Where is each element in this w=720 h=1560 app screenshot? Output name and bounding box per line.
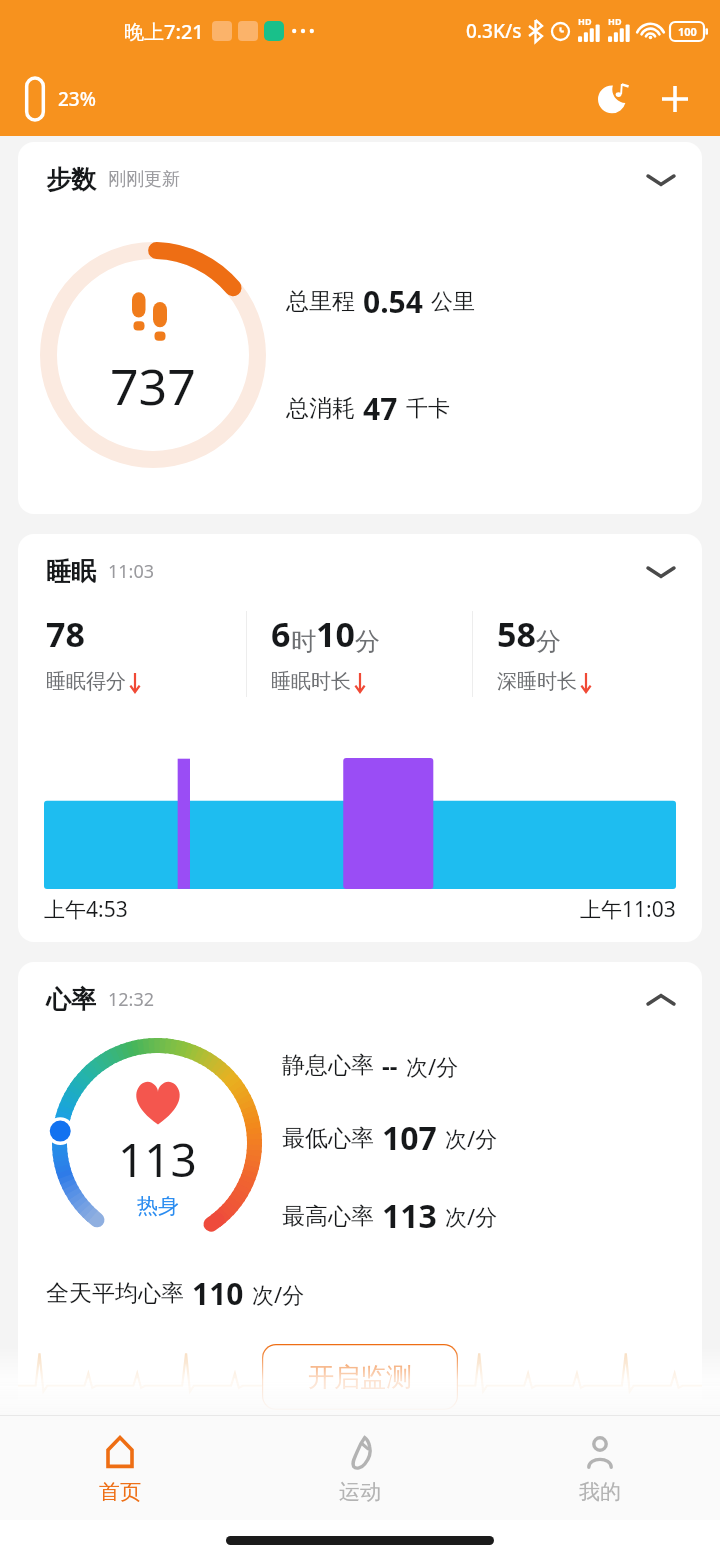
staticText: 上午4:53 bbox=[44, 895, 128, 924]
staticText: 113 bbox=[382, 1194, 437, 1238]
staticText: 我的 bbox=[579, 1479, 621, 1505]
staticText: 公里 bbox=[431, 288, 475, 316]
staticText: 总里程 bbox=[286, 287, 355, 316]
staticText: 深睡时长 bbox=[497, 669, 577, 694]
button[interactable]: Add bbox=[652, 76, 698, 122]
staticText: 6 bbox=[271, 611, 291, 657]
staticText: 12:32 bbox=[108, 987, 155, 1012]
staticText: 热身 bbox=[137, 1193, 179, 1219]
staticText: -- bbox=[382, 1049, 398, 1082]
button[interactable]: 开启监测 bbox=[262, 1344, 458, 1410]
button[interactable]: 步数 bbox=[18, 142, 702, 514]
staticText: 113 bbox=[118, 1128, 197, 1191]
staticText: 最高心率 bbox=[282, 1202, 374, 1231]
staticText: 运动 bbox=[339, 1479, 381, 1505]
staticText: 10 bbox=[316, 611, 355, 657]
staticText: 次/分 bbox=[445, 1123, 498, 1153]
staticText: HD bbox=[608, 15, 622, 27]
button[interactable]: 我的 bbox=[480, 1416, 720, 1520]
staticText: 最低心率 bbox=[282, 1124, 374, 1153]
staticText: 次/分 bbox=[445, 1201, 498, 1231]
button[interactable]: 运动 bbox=[240, 1416, 480, 1520]
staticText: 107 bbox=[382, 1116, 437, 1160]
staticText: 步数 bbox=[46, 164, 96, 195]
staticText: 刚刚更新 bbox=[108, 168, 180, 191]
staticText: 开启监测 bbox=[308, 1361, 412, 1394]
button[interactable]: 步数 bbox=[18, 142, 702, 195]
staticText: 11:03 bbox=[108, 559, 155, 584]
staticText: 静息心率 bbox=[282, 1051, 374, 1080]
staticText: 总消耗 bbox=[286, 394, 355, 423]
button[interactable]: 心率 bbox=[18, 962, 702, 1015]
staticText: 全天平均心率 bbox=[46, 1279, 184, 1308]
staticText: 次/分 bbox=[406, 1051, 459, 1081]
staticText: 23% bbox=[58, 86, 96, 112]
staticText: 睡眠 bbox=[46, 556, 96, 587]
staticText: 睡眠得分 bbox=[46, 669, 126, 694]
staticText: 110 bbox=[192, 1273, 244, 1314]
staticText: 晚上7:21 bbox=[124, 18, 204, 45]
staticText: 上午11:03 bbox=[580, 895, 676, 924]
button[interactable]: 心率 bbox=[18, 962, 702, 1415]
button[interactable]: 睡眠 bbox=[18, 534, 702, 942]
staticText: 47 bbox=[363, 388, 398, 429]
staticText: 分 bbox=[536, 626, 561, 657]
staticText: 千卡 bbox=[406, 395, 450, 423]
staticText: 首页 bbox=[99, 1479, 141, 1505]
staticText: 100 bbox=[678, 24, 697, 39]
staticText: HD bbox=[578, 15, 592, 27]
staticText: 0.54 bbox=[363, 281, 423, 322]
staticText: 0.3K/s bbox=[466, 18, 522, 44]
button[interactable]: Sleep music bbox=[592, 76, 638, 122]
staticText: 58 bbox=[497, 611, 536, 657]
staticText: 次/分 bbox=[252, 1279, 305, 1309]
staticText: 737 bbox=[110, 352, 196, 420]
staticText: 心率 bbox=[46, 984, 96, 1015]
staticText: 78 bbox=[46, 611, 85, 657]
staticText: 睡眠时长 bbox=[271, 669, 351, 694]
staticText: 分 bbox=[355, 626, 380, 657]
button[interactable]: 首页 bbox=[0, 1416, 240, 1520]
staticText: 时 bbox=[291, 626, 316, 657]
button[interactable]: 睡眠 bbox=[18, 534, 702, 587]
